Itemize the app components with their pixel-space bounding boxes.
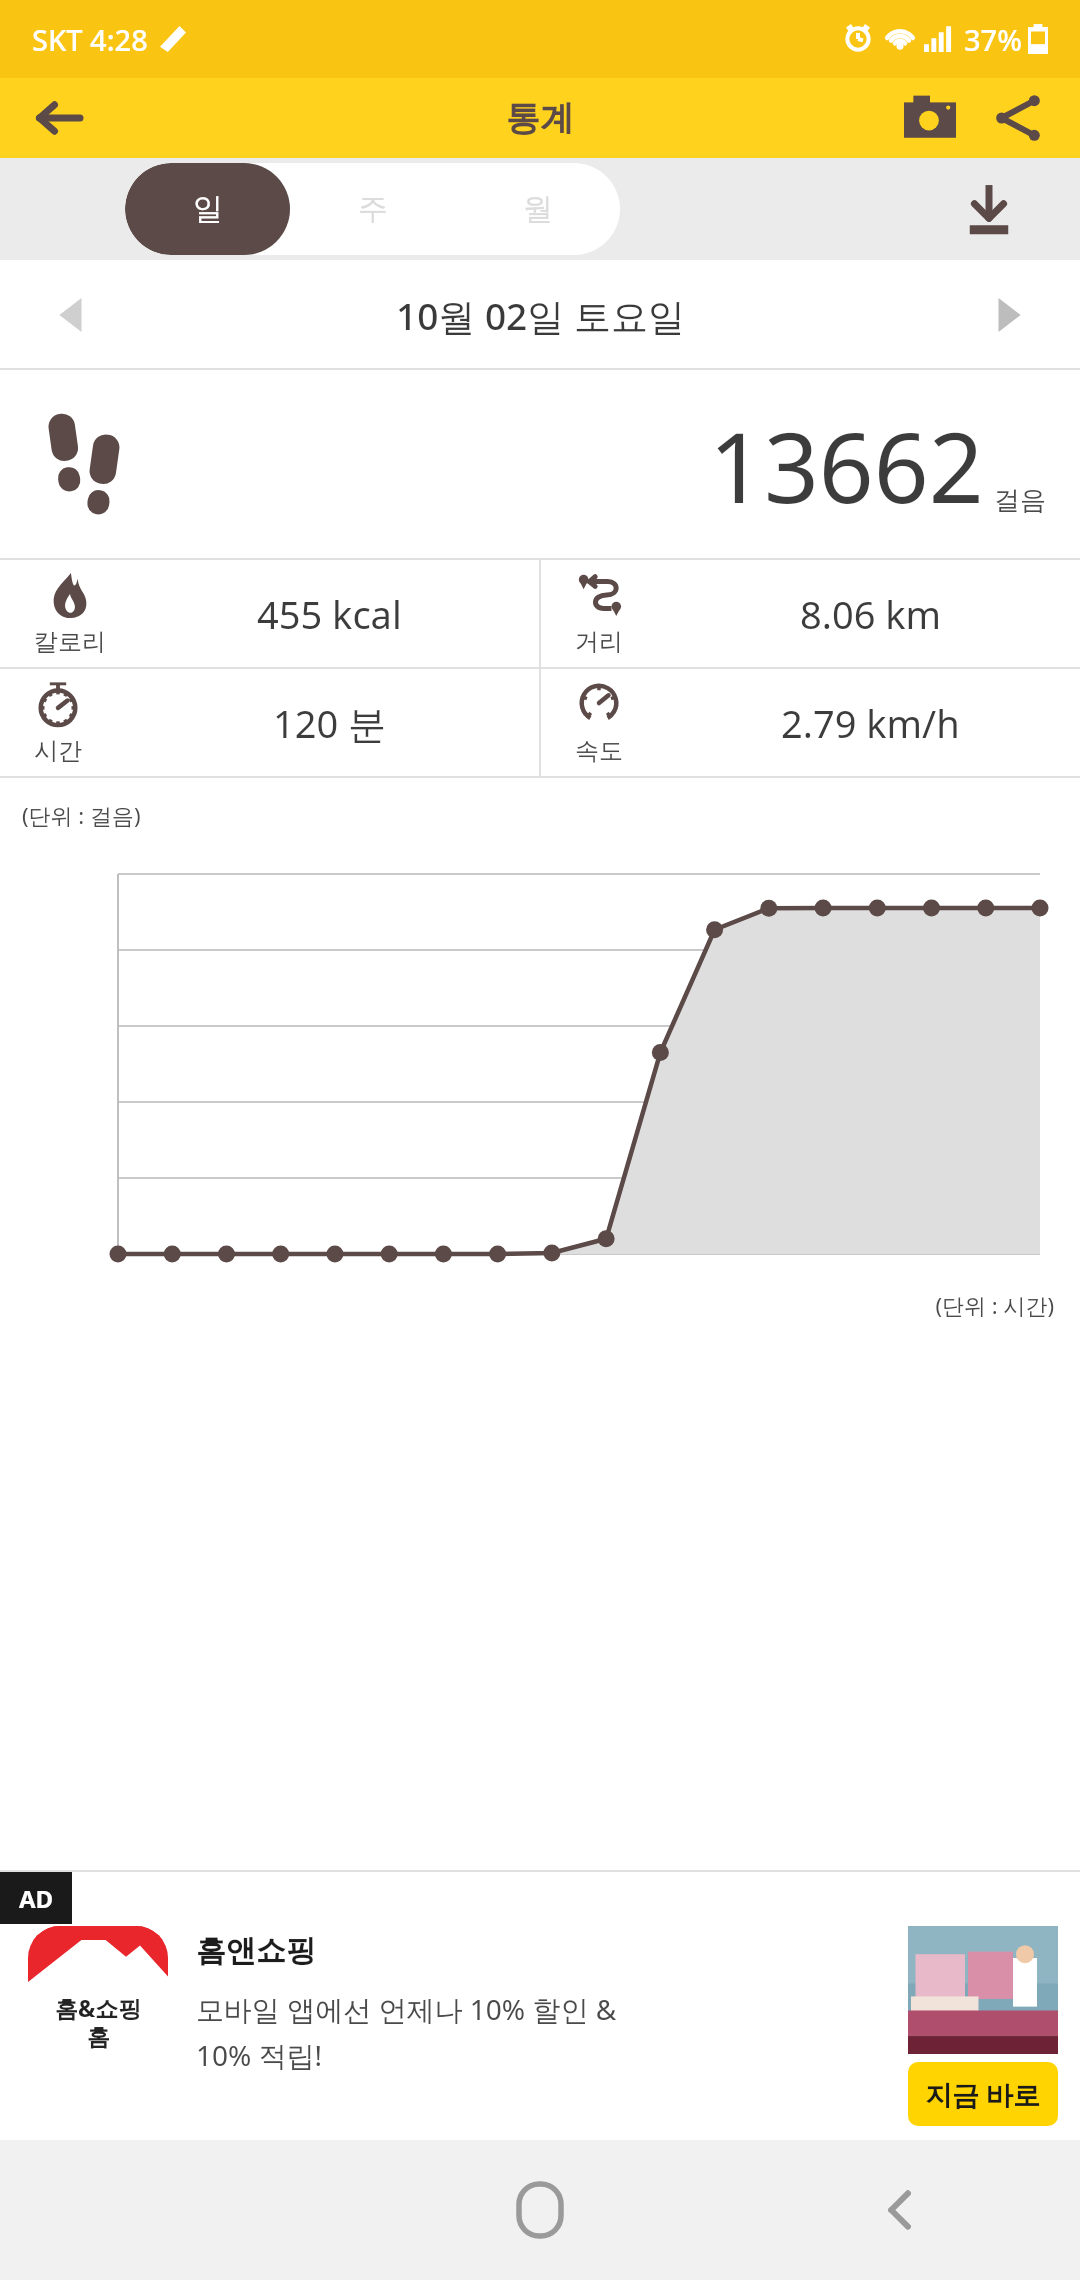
staticText: SKT 4:28 — [32, 20, 148, 59]
staticText: 홈앤쇼핑 — [196, 1932, 316, 1970]
staticText: 주 — [358, 190, 388, 228]
button[interactable]: Back — [22, 82, 94, 154]
staticText: 13662 — [709, 400, 984, 531]
button[interactable]: 월 — [455, 163, 620, 255]
staticText: 칼로리 — [34, 627, 106, 657]
staticText: 시간 — [34, 736, 82, 766]
button[interactable]: 속도 — [541, 669, 1080, 776]
staticText: 홈 — [87, 2023, 110, 2052]
staticText: 일 — [193, 190, 223, 228]
staticText: (단위 : 시간) — [0, 1290, 1054, 1320]
staticText: 속도 — [575, 736, 623, 766]
button[interactable]: 칼로리 — [0, 560, 539, 667]
staticText: 10월 02일 토요일 — [396, 290, 685, 341]
staticText: 120 분 — [273, 697, 387, 749]
staticText: 통계 — [506, 97, 574, 140]
staticText: 거리 — [575, 627, 623, 657]
staticText: 37% — [964, 20, 1022, 59]
staticText: 2.79 km/h — [781, 697, 960, 749]
button[interactable]: 홈&쇼핑 — [28, 1926, 168, 2066]
button[interactable]: 거리 — [541, 560, 1080, 667]
staticText: 455 kcal — [257, 588, 402, 640]
staticText: 모바일 앱에선 언제나 10% 할인 & 10% 적립! — [196, 1990, 617, 2074]
button[interactable]: Camera — [892, 80, 968, 156]
button[interactable]: 지금 바로 — [908, 2062, 1058, 2126]
button[interactable]: Home — [360, 2140, 720, 2280]
button[interactable]: Download — [946, 166, 1032, 252]
button[interactable]: 일 — [125, 163, 290, 255]
button[interactable]: Back — [720, 2140, 1080, 2280]
button[interactable]: 주 — [290, 163, 455, 255]
staticText: 걸음 — [994, 484, 1046, 517]
staticText: 지금 바로 — [925, 2076, 1041, 2113]
staticText: (단위 : 걸음) — [22, 800, 141, 830]
staticText: AD — [19, 1882, 54, 1915]
button[interactable]: Share — [980, 80, 1056, 156]
staticText: 8.06 km — [800, 588, 942, 640]
button[interactable]: Previous day — [38, 280, 108, 350]
staticText: 홈&쇼핑 — [55, 1992, 142, 2023]
staticText: 월 — [523, 190, 553, 228]
button[interactable]: 시간 — [0, 669, 539, 776]
button[interactable]: Next day — [972, 280, 1042, 350]
